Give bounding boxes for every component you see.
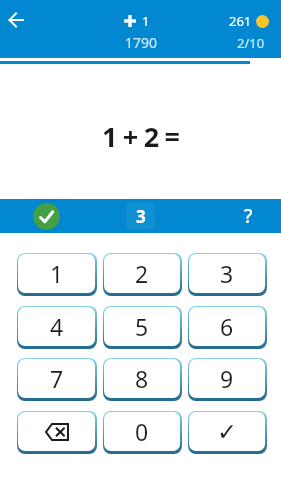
staticText: 7 bbox=[50, 363, 64, 394]
button[interactable]: ✓ bbox=[189, 412, 265, 451]
staticText: 8 bbox=[135, 363, 149, 394]
button[interactable]: 7 bbox=[18, 359, 95, 398]
button[interactable]: 0 bbox=[104, 412, 180, 451]
staticText: 1 bbox=[50, 258, 64, 289]
staticText: ? bbox=[244, 203, 253, 229]
staticText: 1790 bbox=[125, 33, 158, 51]
staticText: 3 bbox=[220, 258, 234, 289]
staticText: ✓ bbox=[217, 418, 238, 446]
button[interactable]: 9 bbox=[189, 359, 265, 398]
staticText: 261 bbox=[229, 12, 252, 30]
button[interactable]: 2 bbox=[104, 254, 180, 293]
staticText: 6 bbox=[220, 311, 234, 342]
button[interactable]: 4 bbox=[18, 307, 95, 346]
staticText: 3 bbox=[136, 205, 146, 228]
staticText: 0 bbox=[135, 416, 149, 447]
button[interactable]: 8 bbox=[104, 359, 180, 398]
staticText: 5 bbox=[135, 311, 149, 342]
staticText: 2/10 bbox=[237, 34, 265, 52]
staticText: 1 bbox=[142, 12, 150, 30]
button[interactable]: 3 bbox=[189, 254, 265, 293]
staticText: 2 bbox=[135, 258, 149, 289]
button[interactable] bbox=[18, 412, 95, 451]
staticText: 4 bbox=[50, 311, 64, 342]
button[interactable] bbox=[2, 6, 30, 34]
button[interactable] bbox=[33, 203, 60, 230]
button[interactable]: ? bbox=[236, 199, 260, 233]
button[interactable]: 5 bbox=[104, 307, 180, 346]
staticText: 9 bbox=[220, 363, 234, 394]
button[interactable]: 1 bbox=[18, 254, 95, 293]
button[interactable]: 6 bbox=[189, 307, 265, 346]
staticText: 1 + 2 = bbox=[102, 118, 180, 152]
